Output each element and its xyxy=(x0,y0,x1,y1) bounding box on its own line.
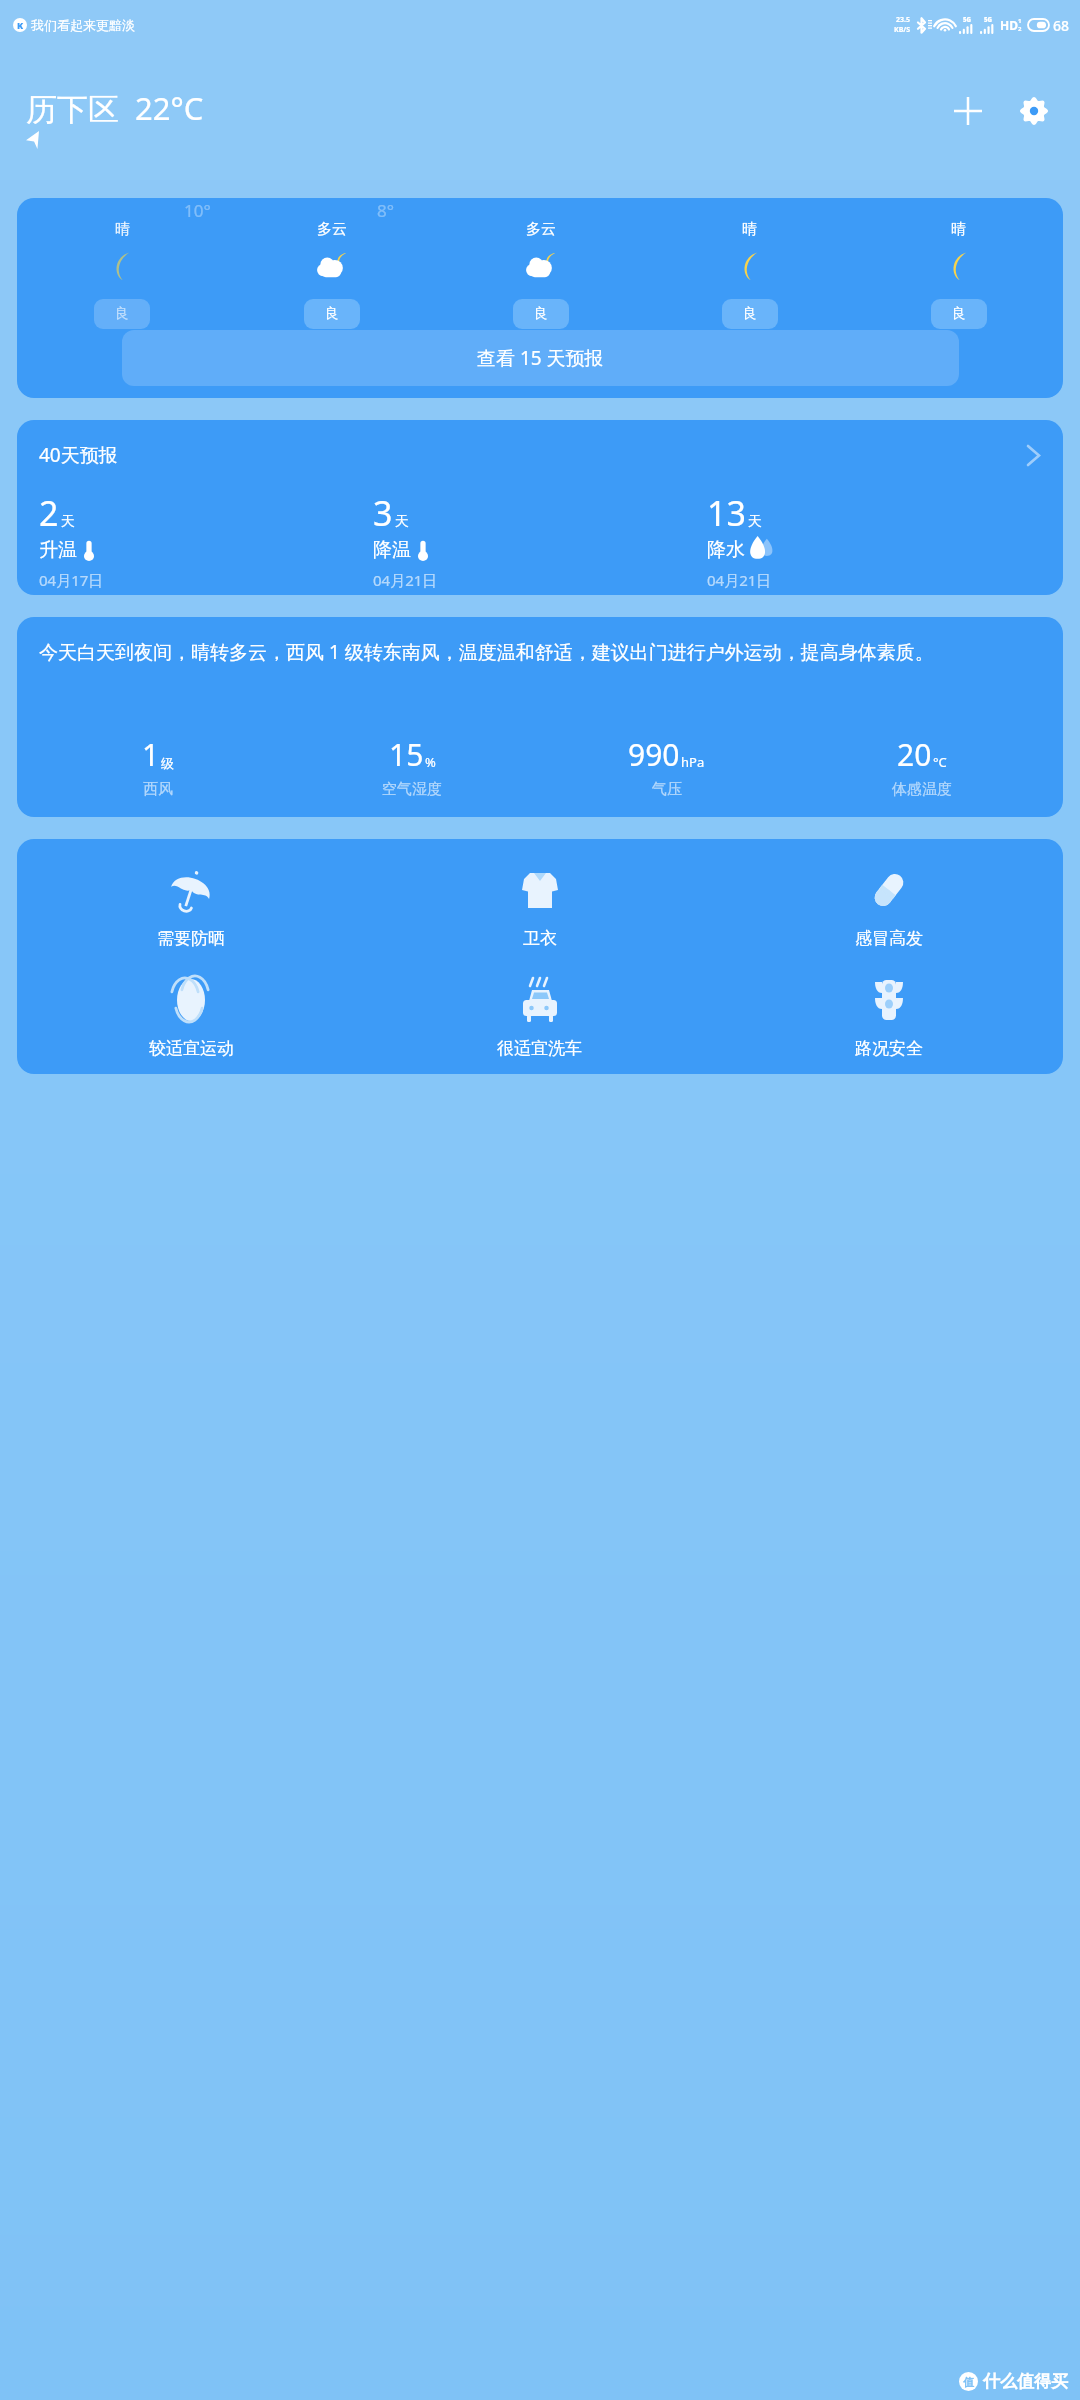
staticText: 空气湿度 xyxy=(382,780,442,799)
staticText: 04月17日 xyxy=(39,570,104,590)
staticText: 较适宜运动 xyxy=(149,1038,234,1059)
staticText: 级 xyxy=(161,755,174,771)
staticText: 查看 15 天预报 xyxy=(477,345,604,371)
staticText: 04月21日 xyxy=(373,570,438,590)
staticText: 多云 xyxy=(526,220,556,239)
staticText: 990 xyxy=(628,734,680,775)
button[interactable]: 需要防晒 xyxy=(17,865,365,949)
staticText: 良 xyxy=(115,305,129,323)
staticText: 路况安全 xyxy=(855,1038,923,1059)
staticText: hPa xyxy=(681,753,705,771)
staticText: % xyxy=(425,753,436,771)
staticText: 04月21日 xyxy=(707,570,772,590)
staticText: 需要防晒 xyxy=(157,928,225,949)
staticText: 晴 xyxy=(742,220,757,239)
staticText: 良 xyxy=(743,305,757,323)
staticText: HD xyxy=(1000,17,1018,33)
button[interactable]: 晴 xyxy=(854,220,1063,329)
staticText: 晴 xyxy=(115,220,130,239)
button[interactable]: 今天白天到夜间，晴转多云，西风 1 级转东南风，温度温和舒适，建议出门进行户外运… xyxy=(17,617,1063,817)
button[interactable]: 多云 xyxy=(227,220,436,329)
staticText: 天 xyxy=(395,513,409,531)
staticText: 天 xyxy=(748,513,762,531)
staticText: 2 xyxy=(39,490,59,536)
staticText: 40天预报 xyxy=(39,442,118,468)
button[interactable]: Add city xyxy=(942,85,994,137)
button[interactable]: 感冒高发 xyxy=(714,865,1063,949)
staticText: 8° xyxy=(377,199,394,222)
staticText: 68 xyxy=(1053,16,1070,35)
staticText: 降温 xyxy=(373,538,411,562)
staticText: 1 xyxy=(142,734,160,775)
staticText: 升温 xyxy=(39,538,77,562)
staticText: 2 xyxy=(1018,25,1022,33)
button[interactable]: 40天预报 xyxy=(17,420,1063,595)
staticText: 我们看起来更黯淡 xyxy=(31,17,135,33)
button[interactable]: 卫衣 xyxy=(365,865,714,949)
staticText: 23.5 xyxy=(896,15,910,25)
staticText: 良 xyxy=(534,305,548,323)
staticText: 20 xyxy=(897,734,932,775)
button[interactable]: 多云 xyxy=(436,220,645,329)
staticText: 晴 xyxy=(951,220,966,239)
staticText: 13 xyxy=(707,490,746,536)
staticText: 1 xyxy=(1018,17,1022,25)
staticText: 什么值得买 xyxy=(983,2371,1068,2392)
staticText: 值 xyxy=(963,2375,974,2389)
staticText: 15 xyxy=(389,734,424,775)
staticText: 降水 xyxy=(707,538,745,562)
button[interactable]: Settings xyxy=(1008,85,1060,137)
staticText: 感冒高发 xyxy=(855,928,923,949)
staticText: 卫衣 xyxy=(523,928,557,949)
staticText: 良 xyxy=(325,305,339,323)
staticText: 气压 xyxy=(652,780,682,799)
staticText: 良 xyxy=(952,305,966,323)
button[interactable]: 晴 xyxy=(17,220,227,329)
staticText: K xyxy=(17,19,24,31)
staticText: 10° xyxy=(184,199,211,222)
staticText: KB/S xyxy=(894,25,911,35)
button[interactable]: 较适宜运动 xyxy=(17,975,365,1059)
staticText: 今天白天到夜间，晴转多云，西风 1 级转东南风，温度温和舒适，建议出门进行户外运… xyxy=(39,639,934,665)
staticText: 多云 xyxy=(317,220,347,239)
staticText: 体感温度 xyxy=(892,780,952,799)
staticText: °C xyxy=(933,753,947,771)
staticText: 很适宜洗车 xyxy=(497,1038,582,1059)
staticText: 天 xyxy=(61,513,75,531)
staticText: 3 xyxy=(373,490,393,536)
button[interactable]: 晴 xyxy=(645,220,854,329)
staticText: 5G xyxy=(963,16,971,24)
staticText: 历下区 22°C xyxy=(26,87,204,129)
staticText: 西风 xyxy=(143,780,173,799)
button[interactable]: 10° xyxy=(17,198,1063,398)
staticText: 5G xyxy=(984,16,992,24)
button[interactable]: 查看 15 天预报 xyxy=(122,330,959,386)
button[interactable]: 很适宜洗车 xyxy=(365,975,714,1059)
button[interactable]: 路况安全 xyxy=(714,975,1063,1059)
